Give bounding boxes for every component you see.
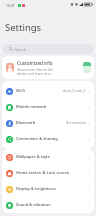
button[interactable]: Bluetooth: [2, 115, 94, 131]
button[interactable]: Wi-Fi: [2, 83, 94, 99]
button[interactable]: Connection & sharing: [2, 131, 94, 147]
staticText: Mobile network: [16, 104, 47, 110]
staticText: whale_5_nano_2: [63, 89, 86, 93]
button[interactable]: Customized info: [2, 56, 94, 79]
staticText: Connection & sharing: [16, 136, 58, 142]
staticText: 10:41: [6, 3, 15, 8]
staticText: Wallpaper & style: [16, 154, 50, 160]
staticText: Wi-Fi: [16, 88, 26, 94]
button[interactable]: Sound & vibration: [2, 197, 94, 213]
button[interactable]: Wallpaper & style: [2, 149, 94, 165]
button[interactable]: Home screen & Lock screen: [2, 165, 94, 181]
staticText: Show more info on the device and learn t…: [17, 67, 54, 76]
button[interactable]: Display & brightness: [2, 181, 94, 197]
staticText: Not connected: [66, 121, 86, 125]
staticText: Bluetooth: [16, 120, 36, 126]
staticText: Home screen & Lock screen: [16, 170, 70, 176]
staticText: Sound & vibration: [16, 202, 51, 208]
staticText: Customized info: [17, 60, 53, 66]
staticText: Display & brightness: [16, 186, 56, 192]
button[interactable]: Search: [2, 44, 94, 54]
button[interactable]: Mobile network: [2, 99, 94, 115]
staticText: Settings: [5, 21, 42, 34]
staticText: Search: [15, 47, 26, 52]
